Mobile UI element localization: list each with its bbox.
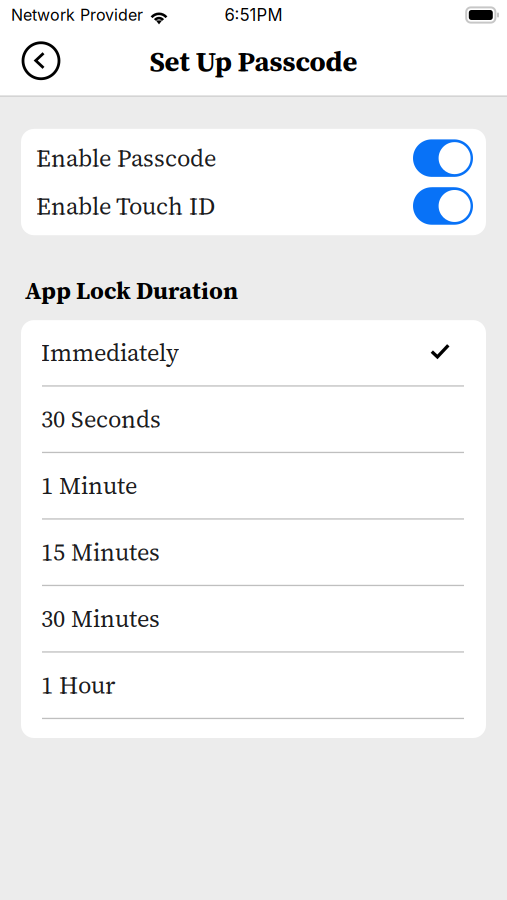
staticText: Network Provider [11,5,143,25]
button[interactable]: 30 Minutes [21,586,486,653]
staticText: 1 Minute [41,469,137,502]
staticText: 15 Minutes [41,536,160,569]
staticText: 30 Minutes [41,602,160,635]
button[interactable]: 15 Minutes [21,520,486,586]
staticText: Enable Touch ID [36,189,215,222]
button[interactable]: 1 Hour [21,653,486,719]
button[interactable]: 30 Seconds [21,387,486,453]
staticText: Set Up Passcode [149,42,357,81]
staticText: Immediately [41,336,179,369]
button[interactable]: Enable Passcode [21,134,486,182]
staticText: 30 Seconds [41,403,161,436]
button[interactable]: Back [21,41,61,81]
button[interactable]: 1 Minute [21,453,486,520]
staticText: Enable Passcode [36,142,216,175]
button[interactable]: Immediately [21,320,486,387]
staticText: 1 Hour [41,669,115,702]
button[interactable]: Enable Touch ID [21,182,486,230]
staticText: 6:51PM [224,5,282,25]
staticText: App Lock Duration [25,274,238,307]
